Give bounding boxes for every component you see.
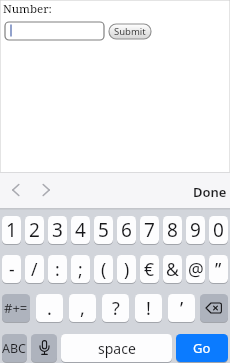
button[interactable]: [5, 22, 104, 40]
button[interactable]: space: [61, 334, 172, 362]
button[interactable]: /: [25, 255, 44, 283]
button[interactable]: ABC: [2, 334, 27, 362]
button[interactable]: [31, 334, 57, 362]
staticText: 9: [190, 217, 201, 243]
button[interactable]: @: [186, 255, 205, 283]
staticText: ’: [180, 296, 184, 321]
button[interactable]: Submit: [109, 24, 151, 39]
staticText: ;: [78, 257, 83, 281]
staticText: Submit: [114, 25, 146, 38]
staticText: :: [55, 257, 60, 281]
button[interactable]: 2: [25, 216, 44, 244]
staticText: (: [101, 257, 107, 281]
button[interactable]: 4: [71, 216, 90, 244]
button[interactable]: 8: [163, 216, 182, 244]
button[interactable]: 0: [209, 216, 228, 244]
staticText: Number:: [3, 1, 52, 17]
staticText: #+=: [4, 299, 28, 317]
button[interactable]: [6, 180, 56, 200]
staticText: 1: [6, 217, 17, 243]
staticText: 8: [167, 217, 178, 243]
staticText: .: [47, 296, 52, 321]
button[interactable]: :: [48, 255, 67, 283]
button[interactable]: 6: [117, 216, 136, 244]
button[interactable]: #+=: [2, 294, 30, 322]
staticText: ”: [215, 257, 222, 281]
staticText: ABC: [2, 340, 27, 357]
staticText: !: [146, 296, 151, 321]
staticText: 7: [144, 217, 155, 243]
button[interactable]: 7: [140, 216, 159, 244]
button[interactable]: 9: [186, 216, 205, 244]
staticText: &: [166, 257, 179, 281]
button[interactable]: Done: [193, 183, 227, 201]
staticText: 0: [213, 217, 224, 243]
button[interactable]: ?: [102, 294, 129, 322]
staticText: -: [9, 257, 15, 281]
button[interactable]: ;: [71, 255, 90, 283]
button[interactable]: 5: [94, 216, 113, 244]
staticText: 5: [98, 217, 109, 243]
button[interactable]: .: [36, 294, 63, 322]
staticText: ,: [80, 296, 85, 321]
staticText: 2: [29, 217, 40, 243]
button[interactable]: &: [163, 255, 182, 283]
button[interactable]: ’: [168, 294, 195, 322]
button[interactable]: ): [117, 255, 136, 283]
button[interactable]: !: [135, 294, 162, 322]
button[interactable]: 3: [48, 216, 67, 244]
staticText: @: [188, 257, 204, 281]
staticText: 3: [52, 217, 63, 243]
button[interactable]: Go: [176, 334, 228, 362]
staticText: /: [31, 257, 38, 281]
staticText: 6: [121, 217, 132, 243]
button[interactable]: 1: [2, 216, 21, 244]
button[interactable]: [200, 294, 228, 322]
staticText: 4: [75, 217, 86, 243]
button[interactable]: -: [2, 255, 21, 283]
button[interactable]: ”: [209, 255, 228, 283]
staticText: ): [124, 257, 130, 281]
staticText: €: [144, 257, 155, 281]
staticText: Go: [193, 339, 211, 357]
button[interactable]: (: [94, 255, 113, 283]
button[interactable]: ,: [69, 294, 96, 322]
staticText: space: [98, 339, 136, 358]
button[interactable]: €: [140, 255, 159, 283]
staticText: ?: [112, 296, 120, 321]
